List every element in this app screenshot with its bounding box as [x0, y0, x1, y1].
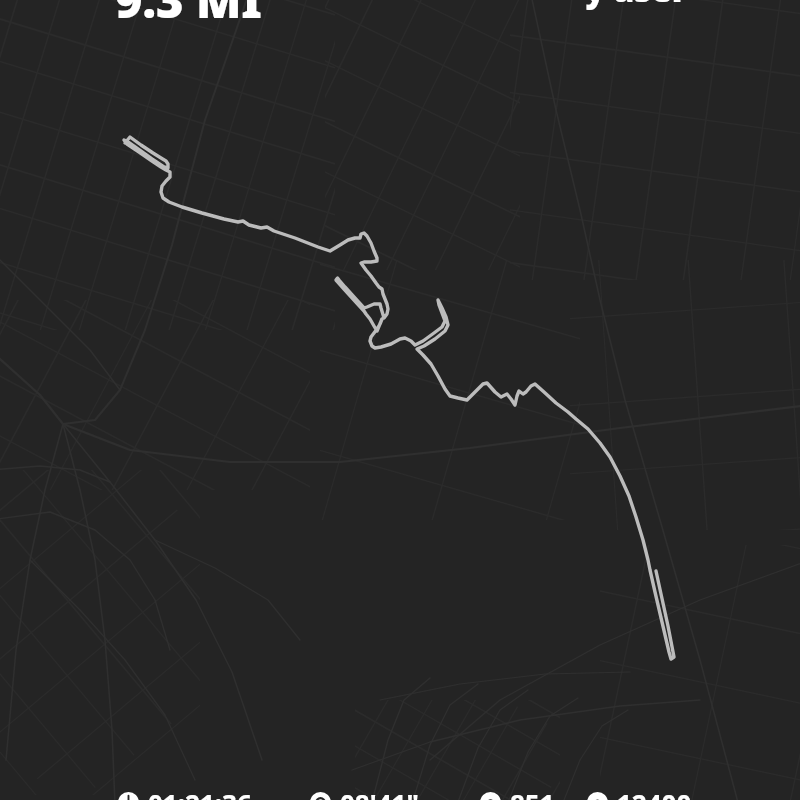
button[interactable]: Calories — [480, 791, 555, 800]
other: Moving time — [118, 792, 139, 800]
staticText: 851 — [510, 786, 555, 800]
button[interactable]: y aser — [585, 0, 688, 12]
staticText: 12400 — [617, 786, 692, 800]
button[interactable]: Steps — [587, 791, 692, 800]
other: Calories — [480, 792, 501, 800]
other: Average pace — [310, 792, 331, 800]
button[interactable]: Average pace — [310, 791, 419, 800]
button[interactable]: 9.3 MI — [115, 0, 263, 32]
button[interactable]: Moving time — [118, 791, 252, 800]
staticText: 08'41" — [340, 786, 419, 800]
other: Steps — [587, 792, 608, 800]
staticText: 01:21:36 — [148, 786, 252, 800]
